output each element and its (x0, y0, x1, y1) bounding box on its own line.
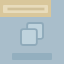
button[interactable] (0, 0, 51, 17)
button[interactable]: Duplicate (21, 23, 43, 45)
